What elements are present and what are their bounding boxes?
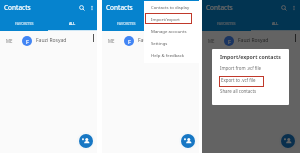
button[interactable]: Contacts to display [144, 1, 201, 13]
staticText: Contacts [4, 3, 31, 12]
button[interactable]: ME [202, 31, 300, 50]
button[interactable]: Search [178, 2, 189, 13]
staticText: Contacts to display [151, 4, 190, 10]
staticText: Manage accounts [151, 28, 187, 34]
staticText: Import/export contacts [220, 53, 281, 60]
staticText: Fauzi Rosyad [36, 37, 67, 44]
button[interactable]: Import from .vcf file [212, 62, 289, 73]
staticText: Settings [151, 40, 168, 46]
staticText: Export to .vcf file [221, 77, 256, 83]
button[interactable]: ALL [48, 15, 97, 31]
button[interactable]: Search [278, 2, 289, 13]
button[interactable]: More options [289, 3, 299, 13]
button[interactable]: ME [0, 31, 97, 50]
staticText: ALL [69, 21, 76, 26]
button[interactable]: Import/export [144, 13, 201, 25]
staticText: Share all contacts [220, 88, 257, 94]
button[interactable]: More options [87, 3, 97, 13]
staticText: Fauzi Rosyad [238, 37, 269, 44]
button[interactable]: Help & feedback [144, 49, 201, 61]
staticText: ME [108, 38, 115, 44]
button[interactable]: Search [76, 2, 87, 13]
staticText: Help & feedback [151, 52, 185, 58]
staticText: FAVORITES [117, 21, 136, 26]
staticText: ME [208, 38, 215, 44]
button[interactable]: Settings [144, 37, 201, 49]
button[interactable]: Manage accounts [144, 25, 201, 37]
staticText: FAVORITES [217, 21, 236, 26]
button[interactable]: ALL [150, 15, 199, 31]
staticText: F [128, 38, 131, 45]
button[interactable]: Share all contacts [212, 85, 289, 96]
button[interactable]: Add contact [181, 134, 195, 148]
staticText: Contacts [206, 3, 233, 12]
button[interactable]: Add contact [79, 134, 93, 148]
staticText: ME [6, 38, 13, 44]
button[interactable]: Add contact [281, 134, 295, 148]
staticText: F [26, 38, 29, 45]
staticText: Fauzi Rosyad [138, 37, 169, 44]
staticText: ALL [171, 21, 178, 26]
button[interactable]: FAVORITES [202, 15, 251, 31]
button[interactable]: Export to .vcf file [212, 73, 289, 86]
staticText: F [228, 38, 231, 45]
button[interactable]: ALL [251, 15, 300, 31]
staticText: Contacts [106, 3, 133, 12]
button[interactable]: FAVORITES [0, 15, 48, 31]
button[interactable]: FAVORITES [102, 15, 150, 31]
staticText: Import/export [151, 16, 180, 22]
staticText: Import from .vcf file [220, 65, 262, 71]
staticText: ALL [272, 21, 279, 26]
staticText: FAVORITES [15, 21, 34, 26]
button[interactable]: ME [102, 31, 199, 50]
